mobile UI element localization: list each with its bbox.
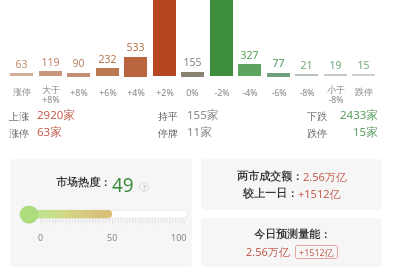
staticText: 上涨 <box>9 110 29 123</box>
staticText: 119 <box>41 55 60 69</box>
staticText: 2920家 <box>37 107 75 123</box>
staticText: 232 <box>98 52 117 66</box>
staticText: +4% <box>127 87 145 99</box>
staticText: +6% <box>99 87 117 99</box>
staticText: 2433家 <box>340 107 378 123</box>
staticText: 下跌 <box>307 110 327 123</box>
staticText: 327 <box>240 48 259 62</box>
button[interactable]: 今日预测量能： <box>201 218 382 267</box>
staticText: +8% <box>70 87 88 99</box>
staticText: 跌停 <box>355 87 373 98</box>
staticText: 49 <box>112 172 134 198</box>
staticText: 100 <box>171 231 187 243</box>
staticText: +8% <box>42 94 60 106</box>
staticText: 2.56万亿 <box>246 244 290 259</box>
staticText: ? <box>143 183 146 192</box>
staticText: 21 <box>300 58 313 72</box>
staticText: -4% <box>242 87 258 99</box>
staticText: 两市成交额： <box>237 169 303 183</box>
staticText: 63 <box>15 57 28 71</box>
staticText: 2.56万亿 <box>303 169 347 184</box>
staticText: -6% <box>271 87 287 99</box>
staticText: 50 <box>107 231 118 243</box>
staticText: 19 <box>329 58 342 72</box>
staticText: -8% <box>328 94 344 106</box>
staticText: 较上一日： <box>243 186 298 200</box>
staticText: 涨停 <box>13 87 31 98</box>
staticText: 0% <box>186 87 199 99</box>
staticText: 15 <box>357 58 370 72</box>
staticText: +1512亿 <box>298 186 341 201</box>
staticText: -8% <box>299 87 315 99</box>
staticText: 155 <box>183 55 202 69</box>
staticText: 涨停 <box>9 127 29 140</box>
staticText: 77 <box>272 56 285 70</box>
button[interactable]: 帮助 <box>139 182 149 192</box>
staticText: 大于 <box>42 85 60 96</box>
staticText: 15家 <box>353 124 378 140</box>
staticText: 跌停 <box>307 127 327 140</box>
staticText: +2% <box>156 87 174 99</box>
staticText: 63家 <box>37 124 62 140</box>
button[interactable]: 两市成交额： <box>201 159 382 210</box>
staticText: 533 <box>126 40 145 54</box>
staticText: 小于 <box>327 85 345 96</box>
staticText: 今日预测量能： <box>254 227 331 241</box>
staticText: +1512亿 <box>299 246 334 258</box>
staticText: 155家 <box>187 107 219 123</box>
staticText: -2% <box>214 87 230 99</box>
staticText: 0 <box>38 231 44 243</box>
staticText: 11家 <box>187 124 212 140</box>
button[interactable]: 市场热度： <box>10 159 192 267</box>
staticText: 市场热度： <box>56 175 111 189</box>
staticText: 持平 <box>158 110 178 123</box>
staticText: 停牌 <box>158 127 178 140</box>
staticText: 90 <box>72 56 85 70</box>
